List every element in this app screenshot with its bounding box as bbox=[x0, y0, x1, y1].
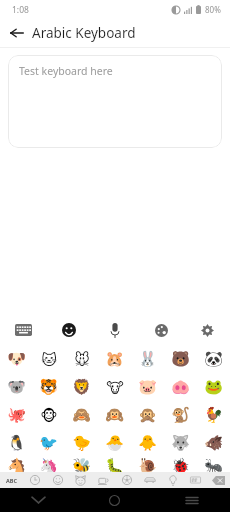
staticText: 🙊 bbox=[138, 406, 157, 424]
staticText: 🐷 bbox=[138, 378, 157, 396]
button[interactable]: ABC bbox=[0, 472, 23, 488]
staticText: 🐦 bbox=[39, 434, 58, 452]
staticText: 🐼 bbox=[204, 350, 223, 368]
staticText: 🐱 bbox=[41, 351, 57, 368]
button[interactable]: 🐹 bbox=[98, 345, 131, 373]
button[interactable]: Test keyboard here bbox=[8, 55, 222, 148]
staticText: 🐞 bbox=[171, 457, 190, 472]
staticText: 🐤 bbox=[72, 434, 91, 452]
staticText: 🐥 bbox=[138, 434, 157, 452]
staticText: 🐌 bbox=[138, 457, 157, 472]
button[interactable]: Travel bbox=[138, 472, 161, 488]
staticText: 🐽 bbox=[171, 378, 190, 396]
button[interactable]: 🐞 bbox=[164, 457, 197, 472]
staticText: 🐯 bbox=[39, 378, 58, 396]
staticText: 🐶 bbox=[7, 350, 26, 368]
button[interactable]: 🐦 bbox=[32, 429, 65, 457]
staticText: 🐸 bbox=[204, 378, 223, 396]
button[interactable]: Back bbox=[6, 22, 28, 44]
staticText: 🦁 bbox=[72, 378, 91, 396]
button[interactable]: 🐻 bbox=[164, 345, 197, 373]
button[interactable]: 🐶 bbox=[0, 345, 32, 373]
button[interactable]: 🐸 bbox=[197, 373, 230, 401]
button[interactable]: Keyboard bbox=[0, 315, 46, 345]
button[interactable]: Voice input bbox=[92, 315, 138, 345]
button[interactable]: 🦁 bbox=[65, 373, 98, 401]
button[interactable]: 🐯 bbox=[32, 373, 65, 401]
button[interactable]: 🐱 bbox=[32, 345, 65, 373]
button[interactable]: Recent apps bbox=[153, 488, 230, 512]
staticText: 🐺 bbox=[171, 434, 190, 452]
staticText: 🐮 bbox=[106, 379, 124, 396]
button[interactable]: 🐌 bbox=[131, 457, 164, 472]
staticText: 🐧 bbox=[7, 434, 26, 452]
button[interactable]: Food and drink bbox=[92, 472, 115, 488]
button[interactable]: 🐵 bbox=[32, 401, 65, 429]
button[interactable]: 🐼 bbox=[197, 345, 230, 373]
button[interactable]: Settings bbox=[184, 315, 230, 345]
button[interactable]: Smileys bbox=[46, 472, 69, 488]
button[interactable]: Home bbox=[76, 488, 153, 512]
staticText: 🙉 bbox=[105, 406, 124, 424]
button[interactable]: Activities bbox=[115, 472, 138, 488]
staticText: 🦄 bbox=[39, 457, 58, 472]
button[interactable]: Objects bbox=[161, 472, 184, 488]
staticText: 🐛 bbox=[105, 457, 124, 472]
button[interactable]: 🐒 bbox=[164, 401, 197, 429]
button[interactable]: 🙊 bbox=[131, 401, 164, 429]
button[interactable]: Recent bbox=[23, 472, 46, 488]
button[interactable]: Theme bbox=[138, 315, 184, 345]
staticText: 🐣 bbox=[105, 434, 124, 452]
button[interactable]: 🙈 bbox=[65, 401, 98, 429]
button[interactable]: 🙉 bbox=[98, 401, 131, 429]
button[interactable]: 🐝 bbox=[65, 457, 98, 472]
button[interactable]: 🐰 bbox=[131, 345, 164, 373]
button[interactable]: Symbols bbox=[184, 472, 207, 488]
button[interactable]: 🐷 bbox=[131, 373, 164, 401]
button[interactable]: Back bbox=[0, 488, 76, 512]
button[interactable]: 🐜 bbox=[197, 457, 230, 472]
staticText: ABC bbox=[6, 477, 17, 484]
button[interactable]: 🐥 bbox=[131, 429, 164, 457]
button[interactable]: 🐣 bbox=[98, 429, 131, 457]
staticText: 🐰 bbox=[138, 350, 157, 368]
staticText: Arabic Keyboard bbox=[32, 24, 136, 42]
button[interactable]: Animals bbox=[69, 472, 92, 488]
button[interactable]: 🐭 bbox=[65, 345, 98, 373]
staticText: 🐓 bbox=[204, 406, 223, 424]
button[interactable]: 🐴 bbox=[0, 457, 32, 472]
staticText: 🐴 bbox=[7, 457, 26, 472]
button[interactable]: Emoji bbox=[46, 315, 92, 345]
staticText: 🐝 bbox=[72, 457, 91, 472]
staticText: 🐻 bbox=[171, 350, 190, 368]
staticText: 🙈 bbox=[72, 406, 91, 424]
staticText: 🐗 bbox=[204, 434, 223, 452]
staticText: 1:08 bbox=[12, 4, 29, 16]
staticText: 🐒 bbox=[171, 406, 190, 424]
staticText: 🐜 bbox=[204, 457, 223, 472]
button[interactable]: 🦄 bbox=[32, 457, 65, 472]
button[interactable]: 🐛 bbox=[98, 457, 131, 472]
button[interactable]: Backspace bbox=[207, 472, 230, 488]
staticText: 80% bbox=[205, 4, 221, 15]
button[interactable]: 🐙 bbox=[0, 401, 32, 429]
staticText: 🐨 bbox=[7, 378, 26, 396]
button[interactable]: 🐮 bbox=[98, 373, 131, 401]
staticText: 🐵 bbox=[40, 407, 58, 424]
button[interactable]: 🐗 bbox=[197, 429, 230, 457]
staticText: 🐙 bbox=[7, 406, 26, 424]
button[interactable]: 🐓 bbox=[197, 401, 230, 429]
staticText: 🐭 bbox=[74, 351, 90, 368]
button[interactable]: 🐧 bbox=[0, 429, 32, 457]
staticText: 🐹 bbox=[105, 350, 124, 368]
button[interactable]: 🐽 bbox=[164, 373, 197, 401]
button[interactable]: 🐤 bbox=[65, 429, 98, 457]
staticText: Test keyboard here bbox=[19, 64, 113, 78]
button[interactable]: 🐨 bbox=[0, 373, 32, 401]
button[interactable]: 🐺 bbox=[164, 429, 197, 457]
